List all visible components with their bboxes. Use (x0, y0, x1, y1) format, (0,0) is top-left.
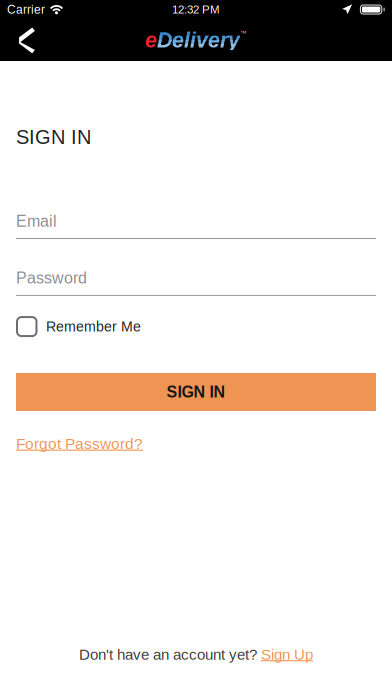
staticText: Delivery (157, 28, 240, 52)
staticText: Sign Up (261, 646, 313, 663)
staticText: Don't have an account yet? (79, 646, 261, 663)
staticText: Carrier (7, 3, 45, 16)
staticText: 12:32 PM (172, 3, 220, 16)
staticText: e (145, 28, 157, 52)
button[interactable]: Sign Up (261, 646, 313, 663)
staticText: Delivery (157, 28, 240, 52)
staticText: Delivery (157, 28, 240, 52)
staticText: Delivery (157, 28, 240, 52)
staticText: Password (16, 269, 87, 287)
staticText: SIGN IN (16, 126, 91, 148)
staticText: Delivery (157, 28, 240, 52)
staticText: Remember Me (46, 319, 141, 334)
staticText: SIGN IN (166, 383, 225, 401)
staticText: Email (16, 212, 57, 230)
staticText: Delivery (157, 28, 240, 52)
staticText: Forgot Password? (16, 435, 143, 452)
button[interactable]: Forgot Password? (16, 435, 143, 452)
button[interactable]: Back (0, 19, 44, 61)
staticText: ™ (240, 30, 247, 37)
button[interactable]: Remember Me (16, 316, 376, 337)
button[interactable]: SIGN IN (16, 373, 376, 411)
